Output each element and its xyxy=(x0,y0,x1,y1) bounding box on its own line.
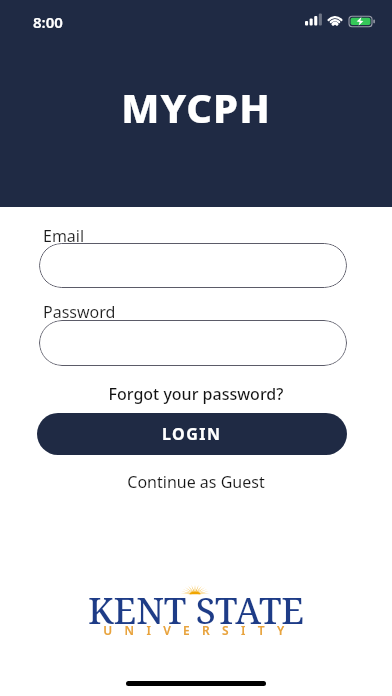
staticText: U N I V E R S I T Y xyxy=(0,622,392,638)
button[interactable]: LOGIN xyxy=(37,413,347,455)
staticText: LOGIN xyxy=(162,423,222,445)
button[interactable]: Continue as Guest xyxy=(0,471,392,493)
staticText: MYCPH xyxy=(0,80,392,134)
staticText: KENT STATE xyxy=(0,586,392,635)
staticText: Password xyxy=(43,301,116,323)
staticText: Email xyxy=(43,225,85,247)
button[interactable]: Forgot your password? xyxy=(0,383,392,405)
button[interactable] xyxy=(39,320,347,366)
button[interactable] xyxy=(39,243,347,288)
staticText: 8:00 xyxy=(33,12,63,32)
